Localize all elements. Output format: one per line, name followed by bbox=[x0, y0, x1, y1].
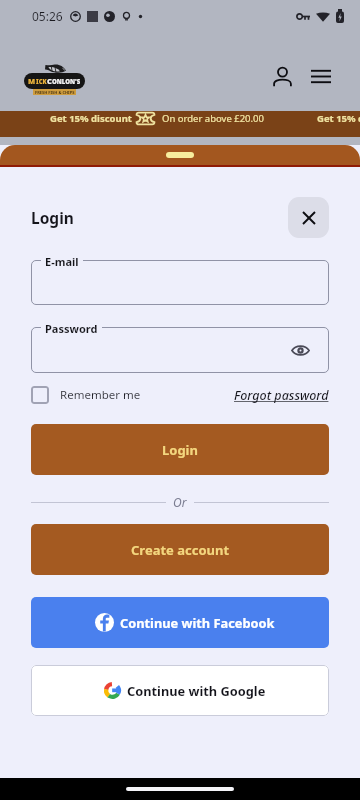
staticText: Remember me bbox=[60, 387, 141, 403]
staticText: M bbox=[28, 76, 36, 86]
button[interactable]: Show password bbox=[288, 338, 312, 362]
button[interactable]: Login bbox=[31, 424, 329, 475]
staticText: Or bbox=[173, 494, 187, 510]
staticText: ONLON'S bbox=[52, 78, 81, 86]
staticText: Continue with Facebook bbox=[120, 614, 275, 631]
staticText: On order above £20.00 bbox=[162, 112, 264, 125]
button[interactable]: Account bbox=[266, 60, 298, 92]
staticText: Create account bbox=[131, 541, 230, 559]
staticText: Forgot password bbox=[234, 387, 329, 404]
staticText: Get 15% discount bbox=[317, 112, 360, 125]
staticText: ICK bbox=[36, 78, 47, 86]
button[interactable]: Continue with Facebook bbox=[31, 597, 329, 648]
staticText: Login bbox=[31, 207, 74, 228]
staticText: Login bbox=[162, 441, 198, 459]
staticText: Password bbox=[45, 321, 98, 336]
staticText: Continue with Google bbox=[127, 682, 266, 699]
button[interactable]: Remember me bbox=[31, 386, 141, 404]
button[interactable]: Menu bbox=[305, 60, 337, 92]
staticText: C bbox=[47, 76, 52, 86]
button[interactable]: Continue with Google bbox=[31, 665, 329, 716]
button[interactable]: Forgot password bbox=[234, 387, 329, 404]
button[interactable]: Close bbox=[288, 197, 329, 238]
staticText: 05:26 bbox=[32, 8, 63, 24]
staticText: Get 15% discount bbox=[50, 112, 132, 125]
staticText: FRESH FISH & CHIPS bbox=[35, 90, 75, 95]
staticText: E-mail bbox=[45, 254, 79, 269]
button[interactable]: Create account bbox=[31, 524, 329, 575]
